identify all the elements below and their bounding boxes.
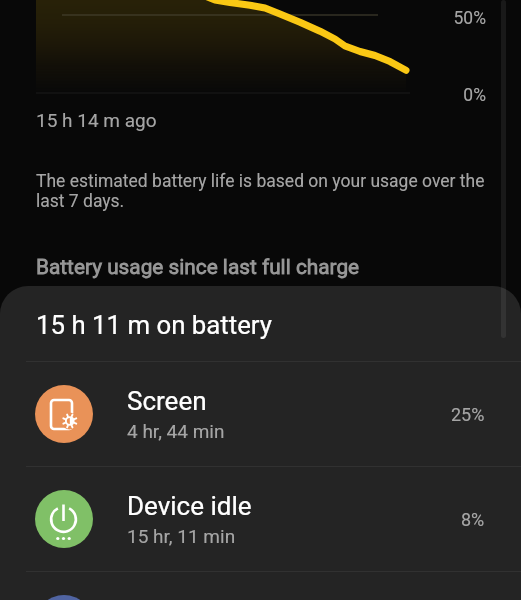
staticText: 15 h 14 m ago — [36, 109, 336, 131]
staticText: Screen — [127, 386, 207, 416]
staticText: 15 h 11 m on battery — [36, 310, 273, 340]
staticText: 50% — [405, 8, 486, 29]
button[interactable]: Google Play services — [0, 572, 521, 600]
staticText: 25% — [451, 404, 485, 425]
staticText: 4 hr, 44 min — [127, 420, 225, 442]
staticText: 8% — [461, 509, 485, 530]
button[interactable]: Device idle — [0, 467, 521, 571]
button[interactable]: Screen — [0, 362, 521, 466]
staticText: The estimated battery life is based on y… — [36, 171, 488, 211]
staticText: Device idle — [127, 491, 252, 521]
staticText: Battery usage since last full charge — [36, 255, 360, 279]
staticText: 15 hr, 11 min — [127, 525, 236, 547]
staticText: 0% — [405, 85, 486, 106]
